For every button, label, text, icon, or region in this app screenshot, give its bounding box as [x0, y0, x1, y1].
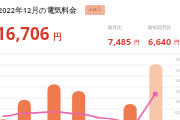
button[interactable]: 未確定	[85, 5, 105, 15]
staticText: 前月比	[108, 25, 122, 31]
staticText: 16,706	[0, 22, 50, 45]
staticText: 円	[134, 39, 140, 46]
staticText: 16,0	[175, 68, 180, 74]
button[interactable]: 前月比	[108, 25, 140, 50]
staticText: 2022年12月の電気料金	[0, 5, 77, 15]
button[interactable]: 前年同月比	[148, 25, 180, 50]
staticText: 10,0	[175, 99, 180, 105]
staticText: 円	[53, 32, 62, 43]
staticText: 未確定	[88, 7, 102, 13]
staticText: 円	[174, 39, 180, 46]
button[interactable]: Electricity usage chart	[0, 50, 180, 120]
staticText: 14,0	[175, 78, 180, 84]
staticText: 7,485	[108, 35, 132, 47]
staticText: 6,640	[148, 35, 172, 47]
staticText: 前年同月比	[148, 25, 171, 31]
staticText: 18,0	[175, 57, 180, 63]
staticText: 12,0	[175, 89, 180, 95]
staticText: 8,00	[175, 110, 180, 116]
